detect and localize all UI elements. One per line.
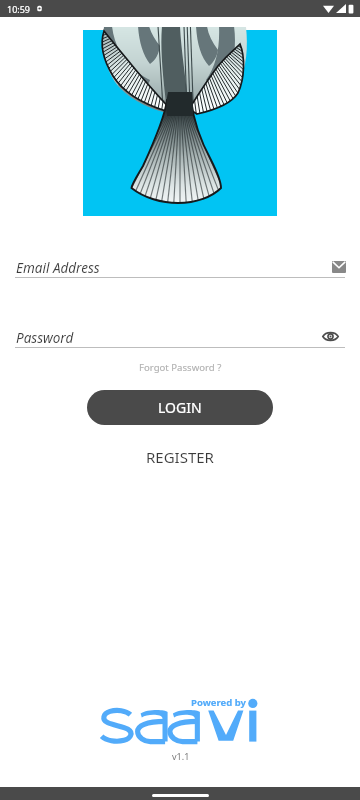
staticText: v1.1 [172, 750, 190, 762]
button[interactable]: LOGIN [87, 390, 273, 425]
staticText: Powered by [191, 696, 246, 709]
staticText: REGISTER [146, 447, 214, 467]
button[interactable]: REGISTER [130, 442, 230, 472]
button[interactable]: Forgot Password ? [125, 357, 236, 378]
button[interactable]: Email [325, 253, 353, 281]
staticText: LOGIN [158, 398, 202, 417]
staticText: 10:59 [7, 3, 31, 15]
staticText: Forgot Password ? [139, 361, 222, 374]
button[interactable]: Toggle password visibility [316, 322, 344, 350]
staticText: Email Address [16, 259, 100, 277]
staticText: Password [16, 329, 74, 347]
other: Email [332, 261, 346, 273]
other: Toggle password visibility [322, 331, 339, 342]
